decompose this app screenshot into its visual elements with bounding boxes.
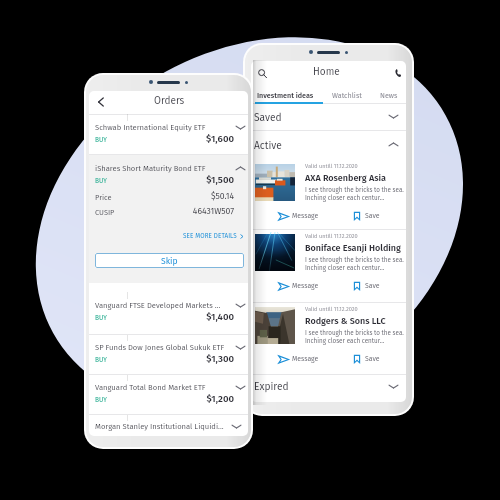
staticText: Orders xyxy=(154,95,185,107)
staticText: Save xyxy=(365,282,380,290)
staticText: Save xyxy=(365,355,380,363)
staticText: Vanguard Total Bond Market ETF xyxy=(95,383,206,392)
button[interactable]: Back xyxy=(90,91,112,113)
staticText: CUSIP xyxy=(95,208,115,217)
staticText: Price xyxy=(95,193,112,202)
staticText: $1,600 xyxy=(148,133,234,145)
button[interactable]: Vanguard Total Bond Market ETF xyxy=(89,374,248,414)
staticText: Schwab International Equity ETF xyxy=(95,123,206,132)
button[interactable]: iShares Short Maturity Bond ETF xyxy=(89,155,248,195)
button[interactable]: Search xyxy=(251,61,273,85)
button[interactable]: Skip xyxy=(95,253,244,268)
staticText: Investment ideas xyxy=(257,91,314,100)
button[interactable]: Save xyxy=(352,351,380,367)
staticText: BUY xyxy=(95,177,107,185)
button[interactable]: Message xyxy=(278,351,319,367)
staticText: SEE MORE DETAILS xyxy=(183,232,237,240)
staticText: I see through the bricks to the sea. xyxy=(305,186,404,194)
button[interactable]: Expired xyxy=(251,374,406,398)
button[interactable]: Call xyxy=(387,61,406,85)
staticText: Morgan Stanley Institutional Liquidi... xyxy=(95,422,224,431)
staticText: Inching closer each centur... xyxy=(305,337,385,345)
staticText: iShares Short Maturity Bond ETF xyxy=(95,164,206,173)
staticText: Save xyxy=(365,212,380,220)
staticText: Inching closer each centur... xyxy=(305,194,385,202)
staticText: Message xyxy=(292,212,319,220)
staticText: Skip xyxy=(161,256,178,266)
staticText: Saved xyxy=(254,111,282,123)
staticText: SP Funds Dow Jones Global Sukuk ETF xyxy=(95,343,225,352)
staticText: AXA Rosenberg Asia xyxy=(305,173,386,184)
staticText: $1,300 xyxy=(148,353,234,365)
staticText: Home xyxy=(313,66,340,78)
staticText: I see through the bricks to the sea. xyxy=(305,256,404,264)
staticText: 46431W507 xyxy=(148,206,234,216)
button[interactable]: Saved xyxy=(251,103,406,130)
button[interactable]: Watchlist xyxy=(327,88,367,103)
staticText: Valid untill 11.12.2020 xyxy=(305,306,358,313)
staticText: Message xyxy=(292,282,319,290)
staticText: Message xyxy=(292,355,319,363)
staticText: Expired xyxy=(254,380,289,392)
staticText: Inching closer each centur... xyxy=(305,264,385,272)
staticText: $1,500 xyxy=(148,174,234,186)
button[interactable]: Investment ideas xyxy=(256,88,315,103)
staticText: Valid untill 11.12.2020 xyxy=(305,233,358,240)
button[interactable]: Vanguard FTSE Developed Markets ... xyxy=(89,292,248,332)
staticText: BUY xyxy=(95,136,107,144)
button[interactable]: News xyxy=(373,88,405,103)
staticText: Rodgers & Sons LLC xyxy=(305,316,386,327)
staticText: I see through the bricks to the sea. xyxy=(305,329,404,337)
staticText: $1,200 xyxy=(148,393,234,405)
button[interactable]: Active xyxy=(251,130,406,159)
staticText: BUY xyxy=(95,356,107,364)
button[interactable]: Save xyxy=(352,278,380,294)
button[interactable]: SP Funds Dow Jones Global Sukuk ETF xyxy=(89,334,248,374)
staticText: $50.14 xyxy=(148,191,234,201)
staticText: Vanguard FTSE Developed Markets ... xyxy=(95,301,221,310)
button[interactable]: Morgan Stanley Institutional Liquidi... xyxy=(89,414,248,436)
button[interactable]: Schwab International Equity ETF xyxy=(89,114,248,154)
staticText: Boniface Esanji Holding xyxy=(305,243,401,254)
button[interactable]: Save xyxy=(352,208,380,224)
staticText: Active xyxy=(254,139,282,151)
staticText: Valid untill 11.12.2020 xyxy=(305,163,358,170)
staticText: $1,400 xyxy=(148,311,234,323)
button[interactable]: Message xyxy=(278,278,319,294)
staticText: BUY xyxy=(95,396,107,404)
button[interactable]: SEE MORE DETAILS xyxy=(183,229,244,243)
staticText: Watchlist xyxy=(332,91,362,100)
staticText: BUY xyxy=(95,314,107,322)
button[interactable]: Message xyxy=(278,208,319,224)
staticText: News xyxy=(380,91,398,100)
